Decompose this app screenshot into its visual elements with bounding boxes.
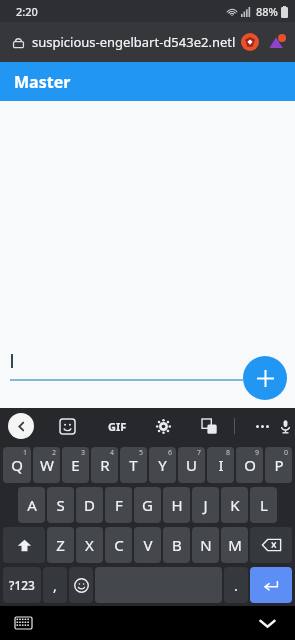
button[interactable]: Brave Shields	[241, 33, 259, 51]
staticText: 3	[81, 448, 86, 458]
staticText: O	[244, 455, 256, 475]
staticText: P	[274, 455, 284, 475]
staticText: W	[40, 455, 54, 475]
staticText: Master	[14, 71, 71, 93]
button[interactable]: V	[134, 527, 161, 563]
staticText: H	[171, 495, 183, 515]
button[interactable]: M	[221, 527, 248, 563]
staticText: F	[115, 495, 123, 515]
button[interactable]: P	[265, 447, 292, 483]
staticText: N	[200, 535, 212, 555]
button[interactable]: Translate	[196, 413, 222, 439]
button[interactable]: Change keyboard	[10, 610, 36, 636]
staticText: B	[172, 535, 182, 555]
staticText: 6	[168, 448, 173, 458]
button[interactable]: N	[192, 527, 219, 563]
staticText: X	[85, 535, 94, 555]
button[interactable]: D	[76, 487, 103, 523]
button[interactable]: F	[105, 487, 132, 523]
button[interactable]: H	[163, 487, 190, 523]
button[interactable]: Add	[243, 356, 287, 400]
staticText: D	[84, 495, 95, 515]
button[interactable]: K	[221, 487, 248, 523]
staticText: Y	[158, 455, 167, 475]
button[interactable]: Emoji	[69, 567, 93, 603]
staticText: T	[129, 455, 138, 475]
staticText: 88%	[256, 4, 278, 19]
staticText: M	[228, 535, 242, 555]
staticText: 7	[197, 448, 202, 458]
button[interactable]: B	[163, 527, 190, 563]
button[interactable]: Settings	[150, 413, 176, 439]
button[interactable]: C	[105, 527, 132, 563]
button[interactable]: U	[178, 447, 205, 483]
button[interactable]: ,	[43, 567, 67, 603]
staticText: Z	[56, 535, 65, 555]
staticText: 2	[52, 448, 57, 458]
staticText: V	[143, 535, 153, 555]
staticText: 1	[23, 448, 28, 458]
staticText: G	[142, 495, 153, 515]
button[interactable]: Q	[3, 447, 31, 483]
button[interactable]: J	[192, 487, 219, 523]
button[interactable]: Hide keyboard	[253, 609, 281, 637]
staticText: J	[203, 495, 208, 515]
button[interactable]: O	[236, 447, 263, 483]
button[interactable]: Back	[8, 413, 34, 439]
staticText: Q	[11, 455, 23, 475]
button[interactable]: More options	[249, 413, 275, 439]
staticText: 0	[284, 448, 289, 458]
button[interactable]: L	[250, 487, 277, 523]
staticText: 5	[139, 448, 144, 458]
button[interactable]: X	[76, 527, 103, 563]
staticText: GIF	[108, 419, 127, 434]
button[interactable]: Stickers	[54, 413, 80, 439]
button[interactable]: W	[33, 447, 60, 483]
button[interactable]: G	[134, 487, 161, 523]
staticText: R	[100, 455, 110, 475]
staticText: 4	[110, 448, 115, 458]
staticText: L	[260, 495, 268, 515]
staticText: ?123	[9, 577, 35, 593]
button[interactable]: Y	[149, 447, 176, 483]
staticText: K	[230, 495, 240, 515]
button[interactable]: GIF	[102, 413, 132, 439]
staticText: E	[71, 455, 80, 475]
button[interactable]: E	[62, 447, 89, 483]
staticText: S	[56, 495, 65, 515]
staticText: .	[234, 576, 238, 595]
staticText: 2:20	[16, 4, 38, 19]
button[interactable]: Enter	[250, 567, 292, 603]
button[interactable]: Backspace	[250, 527, 292, 563]
button[interactable]: I	[207, 447, 234, 483]
button[interactable]: Z	[47, 527, 74, 563]
button[interactable]: ?123	[3, 567, 41, 603]
button[interactable]: Notifications	[268, 31, 287, 53]
staticText: C	[114, 535, 124, 555]
staticText: ,	[53, 576, 57, 595]
button[interactable]: .	[224, 567, 248, 603]
staticText: suspicious-engelbart-d543e2.netl	[32, 33, 236, 51]
staticText: U	[186, 455, 197, 475]
button[interactable]: R	[91, 447, 118, 483]
button[interactable]: Shift	[3, 527, 45, 563]
button[interactable]: S	[47, 487, 74, 523]
button[interactable]: T	[120, 447, 147, 483]
button[interactable]: Voice input	[275, 413, 295, 439]
staticText: 8	[226, 448, 231, 458]
staticText: I	[218, 455, 224, 475]
staticText: 9	[255, 448, 260, 458]
staticText: A	[27, 495, 37, 515]
button[interactable]: A	[18, 487, 45, 523]
